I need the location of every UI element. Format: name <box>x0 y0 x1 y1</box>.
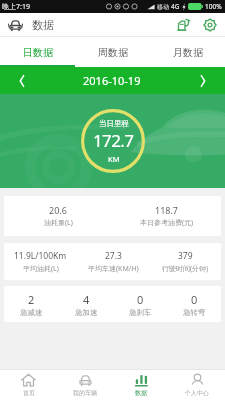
button[interactable]: My vehicle <box>5 15 25 35</box>
staticText: 移动 <box>157 3 169 11</box>
button[interactable]: 数据 <box>113 369 169 400</box>
staticText: 急转弯 <box>183 308 206 317</box>
staticText: 本日参考油费(元) <box>140 218 194 228</box>
staticText: 2016-10-19 <box>83 73 141 88</box>
staticText: 11.9L/100Km <box>14 250 67 262</box>
staticText: 当日里程 <box>99 119 129 128</box>
staticText: 个人中心 <box>185 389 209 397</box>
staticText: 0 <box>191 292 198 307</box>
staticText: 0 <box>137 292 144 307</box>
staticText: 118.7 <box>155 204 179 216</box>
button[interactable]: 20.6 <box>4 196 221 236</box>
button[interactable]: 11.9L/100Km <box>4 243 221 280</box>
button[interactable]: 日数据 <box>0 37 75 67</box>
button[interactable]: Next day <box>193 71 213 91</box>
staticText: 日数据 <box>23 46 53 59</box>
button[interactable]: 首页 <box>0 369 57 400</box>
staticText: 数据 <box>135 389 147 397</box>
staticText: 2 <box>28 292 35 307</box>
staticText: 379 <box>178 250 193 262</box>
button[interactable]: 周数据 <box>75 37 150 67</box>
staticText: 急加速 <box>75 308 98 317</box>
staticText: 急减速 <box>20 308 43 317</box>
button[interactable]: 我的车辆 <box>57 369 113 400</box>
staticText: KM <box>108 154 120 164</box>
button[interactable]: Refuel <box>174 15 194 35</box>
button[interactable]: Settings <box>200 15 220 35</box>
staticText: 100% <box>205 2 222 11</box>
staticText: 晚上7:19 <box>2 2 30 12</box>
button[interactable]: 月数据 <box>150 37 225 67</box>
button[interactable]: 个人中心 <box>169 369 225 400</box>
staticText: 4 <box>83 292 90 307</box>
staticText: 月数据 <box>173 46 203 59</box>
button[interactable]: 2 <box>4 286 221 322</box>
staticText: 周数据 <box>98 46 128 59</box>
staticText: 急刹车 <box>129 308 152 317</box>
staticText: 27.3 <box>105 250 122 262</box>
staticText: 平均油耗(L) <box>23 264 59 274</box>
staticText: 4G <box>171 2 180 11</box>
staticText: 我的车辆 <box>73 389 97 397</box>
staticText: 数据 <box>32 18 54 32</box>
staticText: 平均车速(KM/H) <box>88 264 139 274</box>
staticText: 油耗量(L) <box>44 218 73 228</box>
staticText: 172.7 <box>93 129 134 152</box>
button[interactable]: Previous day <box>12 71 32 91</box>
staticText: 首页 <box>23 389 35 397</box>
staticText: 20.6 <box>49 204 67 216</box>
staticText: 行驶时间(分钟) <box>162 264 209 274</box>
